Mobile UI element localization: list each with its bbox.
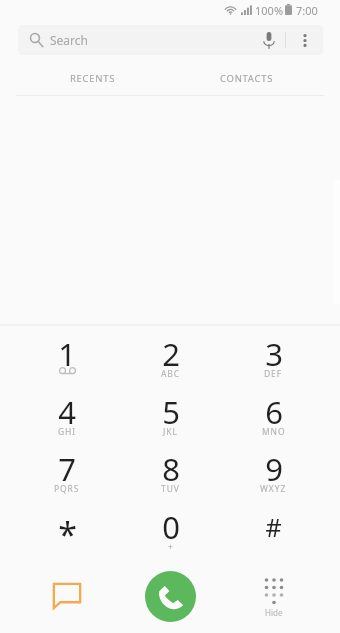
button[interactable]: # [222, 505, 325, 560]
button[interactable]: Hide keypad [222, 560, 325, 633]
button[interactable]: 9 [222, 447, 325, 505]
button[interactable]: Message [15, 560, 119, 633]
staticText: # [265, 510, 282, 544]
staticText: 7:00 [296, 3, 318, 18]
staticText: 6 [265, 391, 283, 433]
staticText: 9 [265, 448, 283, 490]
staticText: 3 [265, 333, 283, 375]
staticText: 7 [58, 448, 76, 490]
staticText: PQRS [54, 483, 80, 495]
staticText: TUV [161, 483, 180, 495]
staticText: JKL [163, 426, 178, 438]
staticText: ABC [161, 368, 181, 380]
button[interactable]: 1 [15, 332, 119, 390]
staticText: CONTACTS [220, 72, 274, 85]
staticText: 4 [58, 391, 76, 433]
button[interactable]: 5 [119, 390, 222, 447]
button[interactable]: More options [286, 25, 323, 55]
staticText: Hide [265, 607, 283, 618]
button[interactable]: 6 [222, 390, 325, 447]
staticText: RECENTS [70, 72, 116, 85]
staticText: 1 [58, 333, 76, 375]
staticText: DEF [264, 368, 283, 380]
staticText: + [168, 541, 174, 553]
staticText: 100% [255, 3, 284, 18]
button[interactable]: 3 [222, 332, 325, 390]
button[interactable]: 4 [15, 390, 119, 447]
staticText: MNO [262, 426, 286, 438]
staticText: 2 [162, 333, 180, 375]
staticText: Search [50, 32, 88, 48]
button[interactable]: 0 [119, 505, 222, 560]
button[interactable]: * [15, 505, 119, 560]
button[interactable]: CONTACTS [170, 62, 324, 95]
staticText: GHI [58, 426, 77, 438]
button[interactable]: Voice search [252, 25, 285, 55]
button[interactable]: Call [145, 571, 196, 622]
staticText: 0 [162, 506, 180, 548]
staticText: * [58, 511, 77, 557]
button[interactable]: 2 [119, 332, 222, 390]
button[interactable]: 8 [119, 447, 222, 505]
button[interactable]: 7 [15, 447, 119, 505]
button[interactable]: RECENTS [16, 62, 170, 95]
staticText: 5 [162, 391, 180, 433]
staticText: 8 [162, 448, 180, 490]
staticText: WXYZ [260, 483, 287, 495]
